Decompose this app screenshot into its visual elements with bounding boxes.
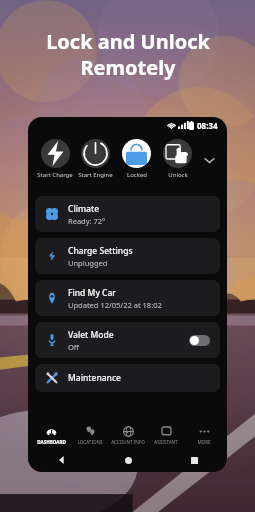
staticText: Climate	[68, 203, 100, 215]
button[interactable]: Start Charge	[35, 137, 75, 181]
staticText: Ready: 72°	[68, 216, 106, 226]
staticText: Charge Settings	[68, 245, 133, 257]
button[interactable]: ACCOUNT INFO	[109, 422, 147, 448]
button[interactable]: DASHBOARD	[32, 422, 71, 448]
button[interactable]: Valet Mode toggle	[189, 335, 210, 346]
button[interactable]: Locked	[116, 137, 157, 181]
button[interactable]: Back	[28, 448, 95, 472]
staticText: Start Engine	[78, 171, 113, 179]
staticText: Unplugged	[68, 258, 108, 268]
staticText: LOCATIONS	[77, 439, 103, 445]
button[interactable]: Maintenance	[35, 364, 220, 392]
staticText: Maintenance	[68, 372, 121, 384]
staticText: MORE	[197, 439, 211, 445]
button[interactable]: Unlock	[157, 137, 198, 181]
button[interactable]: Recent apps	[161, 448, 227, 472]
staticText: Locked	[127, 171, 147, 179]
staticText: Off	[68, 342, 80, 352]
staticText: ASSISTANT	[154, 439, 178, 445]
staticText: ACCOUNT INFO	[111, 439, 145, 445]
staticText: Start Charge	[37, 171, 73, 179]
staticText: Updated 12/05/22 at 18:02	[68, 300, 162, 310]
button[interactable]: LOCATIONS	[71, 422, 109, 448]
button[interactable]: Charge Settings	[35, 238, 220, 274]
staticText: 08:34	[197, 120, 218, 131]
staticText: Lock and Unlock Remotely	[46, 28, 210, 80]
button[interactable]: Start Engine	[75, 137, 116, 181]
staticText: Find My Car	[68, 287, 116, 299]
button[interactable]: MORE	[185, 422, 223, 448]
button[interactable]: Home	[95, 448, 161, 472]
button[interactable]: Valet Mode	[35, 322, 220, 358]
button[interactable]: ASSISTANT	[147, 422, 185, 448]
button[interactable]: Find My Car	[35, 280, 220, 316]
staticText: DASHBOARD	[37, 439, 66, 445]
staticText: Unlock	[168, 171, 188, 179]
button[interactable]: Climate	[35, 196, 220, 232]
staticText: Valet Mode	[68, 329, 114, 341]
button[interactable]: Collapse	[198, 137, 220, 183]
